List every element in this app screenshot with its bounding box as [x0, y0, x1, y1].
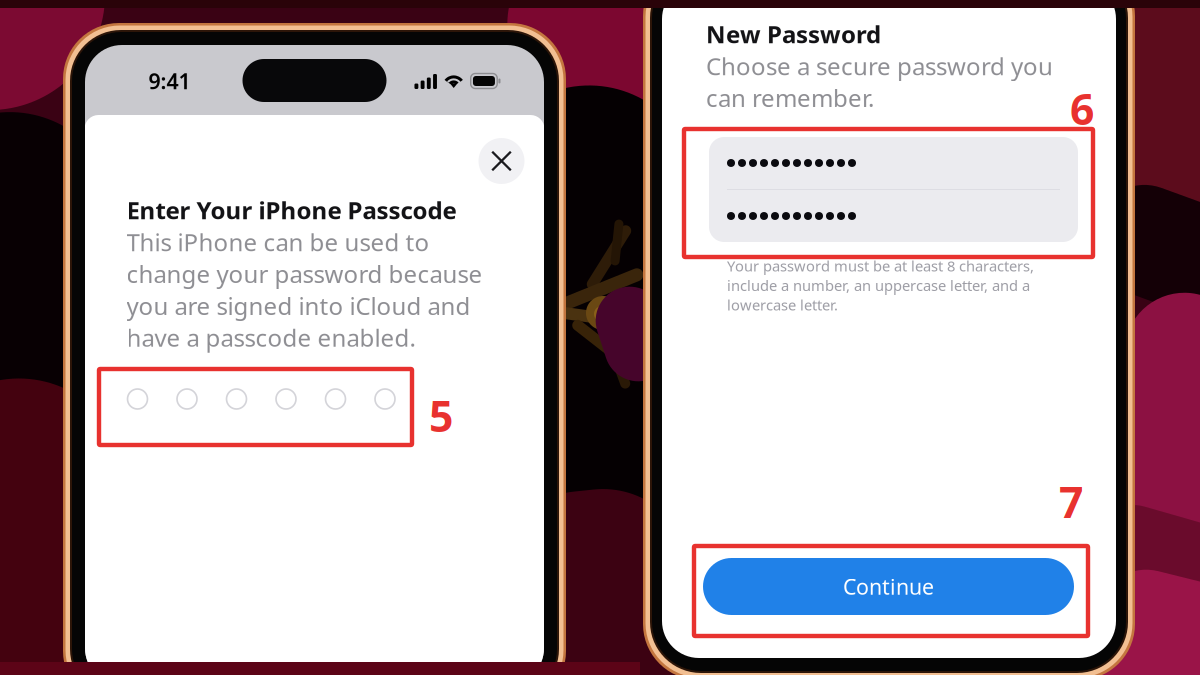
staticText: New Password: [706, 18, 881, 50]
staticText: 9:41: [148, 67, 190, 95]
staticText: 5: [429, 387, 453, 444]
staticText: Continue: [843, 572, 934, 601]
staticText: 7: [1059, 473, 1083, 530]
button[interactable]: Continue: [703, 558, 1074, 615]
staticText: Enter Your iPhone Passcode: [126, 194, 456, 226]
staticText: Your password must be at least 8 charact…: [727, 256, 1034, 314]
staticText: This iPhone can be used to change your p…: [126, 226, 482, 353]
staticText: Choose a secure password you can remembe…: [706, 50, 1053, 114]
staticText: 6: [1070, 80, 1094, 137]
button[interactable]: Close: [478, 138, 524, 184]
